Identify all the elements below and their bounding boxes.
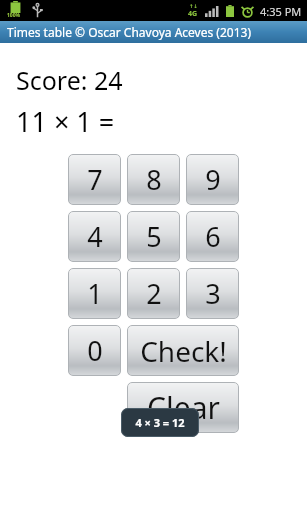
staticText: 2 xyxy=(146,275,162,312)
button[interactable]: 9 xyxy=(186,154,239,205)
staticText: 0 xyxy=(87,332,103,369)
staticText: Clear xyxy=(147,387,220,428)
staticText: Times table © Oscar Chavoya Aceves (2013… xyxy=(7,24,252,40)
button[interactable]: Clear xyxy=(127,382,239,433)
staticText: ↑↓ xyxy=(189,3,198,9)
staticText: 5 xyxy=(146,218,162,255)
staticText: 100% xyxy=(7,12,21,19)
button[interactable]: 5 xyxy=(127,211,180,262)
button[interactable]: 1 xyxy=(68,268,121,319)
button[interactable]: 0 xyxy=(68,325,121,376)
staticText: Score: 24 xyxy=(16,63,123,97)
staticText: 4 × 3 = 12 xyxy=(135,415,185,430)
button[interactable]: 8 xyxy=(127,154,180,205)
staticText: 4 xyxy=(87,218,103,255)
staticText: 7 xyxy=(87,161,103,198)
staticText: 1 xyxy=(87,275,103,312)
staticText: 4:35 PM xyxy=(260,4,302,19)
button[interactable]: 6 xyxy=(186,211,239,262)
button[interactable]: Check! xyxy=(127,325,239,376)
staticText: 6 xyxy=(205,218,221,255)
staticText: 4G xyxy=(188,9,198,19)
staticText: 3 xyxy=(205,275,221,312)
button[interactable]: 7 xyxy=(68,154,121,205)
staticText: 11 × 1 = xyxy=(16,103,115,140)
button[interactable]: 3 xyxy=(186,268,239,319)
staticText: 9 xyxy=(205,161,221,198)
staticText: Check! xyxy=(140,332,227,370)
button[interactable]: 2 xyxy=(127,268,180,319)
staticText: 8 xyxy=(146,161,162,198)
button[interactable]: 4 xyxy=(68,211,121,262)
